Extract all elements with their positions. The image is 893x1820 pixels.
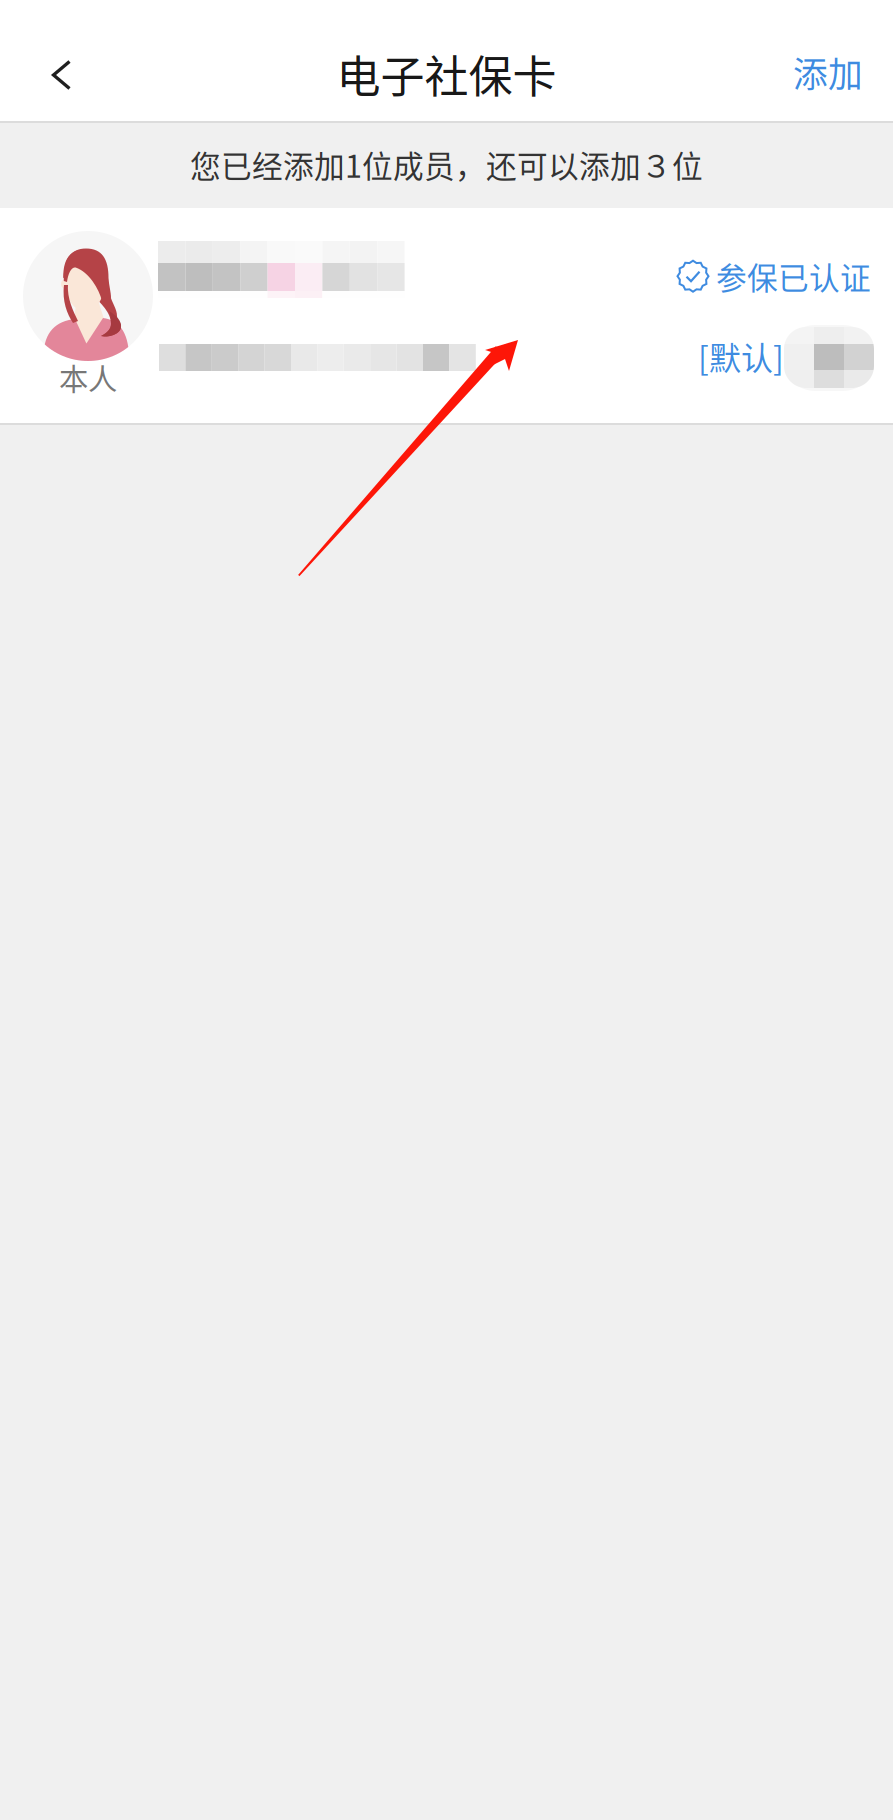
button[interactable]: 添加 [733, 0, 893, 121]
button[interactable]: 参保已认证 [676, 254, 871, 298]
staticText: [默认] [698, 333, 784, 379]
button[interactable]: [默认] [698, 333, 784, 379]
staticText: 本人 [59, 356, 117, 398]
staticText: 电子社保卡 [336, 42, 556, 106]
button[interactable]: 返回 [0, 0, 124, 121]
staticText: 您已经添加1位成员，还可以添加３位 [190, 142, 703, 187]
staticText: 参保已认证 [716, 254, 871, 298]
staticText: 添加 [793, 47, 863, 97]
button[interactable]: 本人 [23, 231, 153, 398]
